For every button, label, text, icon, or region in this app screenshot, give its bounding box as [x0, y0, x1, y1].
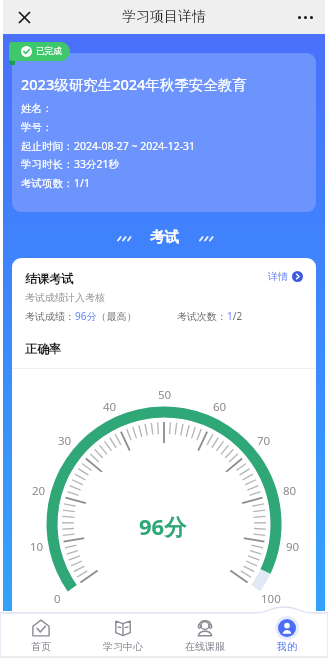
staticText: 80: [283, 483, 297, 499]
staticText: 2023级研究生2024年秋季安全教育: [21, 74, 247, 94]
staticText: 我的: [277, 640, 297, 653]
staticText: 50: [158, 387, 172, 403]
staticText: 姓名：: [21, 102, 53, 115]
staticText: 学习中心: [103, 640, 143, 653]
staticText: 学习时长：: [21, 158, 74, 171]
staticText: 0: [54, 591, 61, 607]
staticText: 100: [261, 591, 281, 607]
staticText: 考试成绩：96分（最高）: [25, 309, 137, 323]
staticText: 首页: [31, 640, 51, 653]
button[interactable]: 首页: [0, 611, 82, 658]
staticText: 正确率: [25, 341, 61, 356]
staticText: 在线课服: [185, 640, 225, 653]
staticText: 20: [32, 483, 46, 499]
staticText: 30: [58, 433, 72, 449]
staticText: 考试成绩计入考核: [25, 291, 105, 304]
staticText: 70: [257, 433, 271, 449]
button[interactable]: 我的: [246, 611, 328, 658]
staticText: 已完成: [36, 46, 62, 57]
staticText: 学习项目详情: [122, 8, 206, 26]
staticText: 40: [103, 399, 117, 415]
staticText: 2024-08-27 ~ 2024-12-31: [74, 139, 196, 153]
staticText: 1/1: [74, 176, 90, 190]
staticText: 学号：: [21, 121, 53, 134]
button[interactable]: 详情: [268, 270, 303, 283]
button[interactable]: 在线课服: [164, 611, 246, 658]
staticText: 考试: [150, 228, 179, 246]
button[interactable]: Close: [11, 4, 37, 30]
button[interactable]: More options: [292, 4, 318, 30]
staticText: 详情: [268, 270, 288, 283]
staticText: 60: [213, 399, 227, 415]
staticText: 结课考试: [25, 271, 73, 286]
staticText: 96分: [139, 511, 187, 541]
staticText: 考试项数：: [21, 177, 74, 190]
staticText: 10: [30, 539, 44, 555]
button[interactable]: 学习中心: [82, 611, 164, 658]
staticText: 90: [286, 539, 300, 555]
staticText: 考试次数：1/2: [177, 309, 243, 323]
staticText: 起止时间：: [21, 140, 74, 153]
staticText: 33分21秒: [74, 157, 120, 171]
